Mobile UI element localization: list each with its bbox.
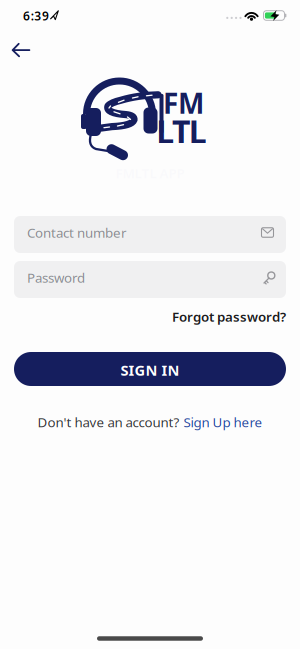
button[interactable]: Sign Up here — [183, 413, 262, 431]
staticText: Don't have an account? — [37, 413, 179, 431]
button[interactable]: Password — [14, 261, 286, 298]
staticText: SIGN IN — [120, 360, 179, 380]
staticText: Contact number — [27, 224, 127, 241]
button[interactable]: Forgot password? — [172, 308, 286, 325]
staticText: LTL — [156, 110, 207, 152]
button[interactable]: SIGN IN — [14, 352, 286, 386]
staticText: FM — [163, 84, 204, 122]
button[interactable]: Back — [12, 42, 31, 59]
staticText: Sign Up here — [183, 413, 262, 431]
staticText: Password — [27, 269, 85, 286]
staticText: 6:39 — [23, 8, 49, 24]
button[interactable]: Contact number — [14, 216, 286, 253]
staticText: Forgot password? — [172, 308, 286, 325]
